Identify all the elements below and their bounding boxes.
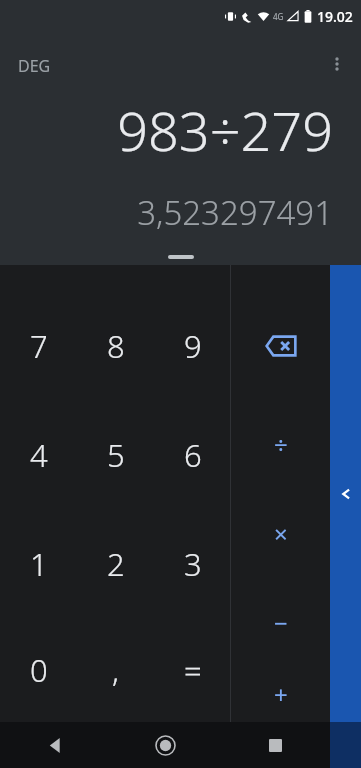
staticText: 983÷279: [117, 93, 333, 167]
staticText: 4: [30, 434, 48, 476]
staticText: 6: [184, 434, 202, 476]
staticText: 8: [107, 325, 125, 367]
staticText: 3: [184, 543, 202, 585]
button[interactable]: Expand history: [168, 255, 194, 259]
staticText: DEG: [18, 55, 51, 77]
button[interactable]: +: [231, 667, 330, 722]
button[interactable]: 6: [154, 400, 231, 509]
button[interactable]: More options: [319, 46, 355, 82]
button[interactable]: Back: [0, 722, 110, 768]
staticText: =: [184, 649, 202, 691]
staticText: 19.02: [317, 7, 353, 26]
button[interactable]: Open scientific pad: [330, 265, 361, 722]
button[interactable]: 0: [0, 618, 77, 722]
button[interactable]: ,: [77, 618, 154, 722]
staticText: 1: [30, 543, 48, 585]
button[interactable]: 7: [0, 291, 77, 400]
button[interactable]: 9: [154, 291, 231, 400]
staticText: 9: [184, 325, 202, 367]
staticText: 2: [107, 543, 125, 585]
staticText: 0: [30, 649, 48, 691]
staticText: 4G: [273, 11, 284, 22]
button[interactable]: −: [231, 578, 330, 667]
button[interactable]: Home: [110, 722, 220, 768]
staticText: ÷: [274, 428, 288, 461]
button[interactable]: 4: [0, 400, 77, 509]
button[interactable]: ×: [231, 489, 330, 578]
staticText: −: [274, 606, 288, 639]
button[interactable]: 1: [0, 509, 77, 618]
staticText: ×: [274, 517, 288, 550]
staticText: 7: [30, 325, 48, 367]
button[interactable]: 5: [77, 400, 154, 509]
button[interactable]: =: [154, 618, 231, 722]
button[interactable]: 8: [77, 291, 154, 400]
button[interactable]: 3: [154, 509, 231, 618]
staticText: 5: [107, 434, 125, 476]
button[interactable]: Backspace: [231, 291, 330, 400]
staticText: ,: [112, 649, 119, 691]
button[interactable]: ÷: [231, 400, 330, 489]
staticText: 3,523297491: [137, 190, 333, 235]
staticText: +: [274, 678, 288, 711]
button[interactable]: Recent apps: [220, 722, 330, 768]
button[interactable]: 2: [77, 509, 154, 618]
